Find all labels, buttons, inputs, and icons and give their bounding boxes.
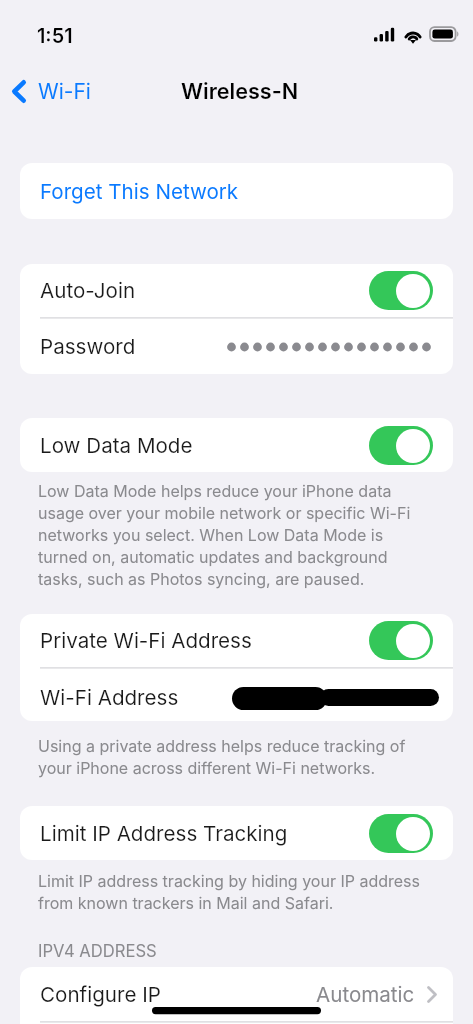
staticText: Automatic: [316, 982, 415, 1007]
button[interactable]: Back to Wi-Fi: [0, 71, 103, 112]
staticText: 1:51: [37, 24, 73, 48]
button[interactable]: Private Wi-Fi Address: [20, 614, 453, 667]
staticText: Using a private address helps reduce tra…: [38, 736, 428, 777]
button[interactable]: Forget This Network: [20, 163, 453, 219]
button[interactable]: Auto-Join: [20, 264, 453, 317]
button[interactable]: Configure IP: [20, 967, 453, 1021]
staticText: Wireless-N: [181, 78, 299, 104]
staticText: Private Wi-Fi Address: [40, 628, 252, 653]
staticText: Password: [40, 334, 136, 359]
staticText: Wi-Fi Address: [40, 685, 179, 710]
button[interactable]: Toggle on: [369, 271, 433, 310]
staticText: Wi-Fi: [38, 79, 91, 104]
button[interactable]: Wi-Fi Address: [20, 669, 453, 721]
staticText: IPV4 ADDRESS: [38, 941, 157, 961]
staticText: Limit IP Address Tracking: [40, 821, 288, 846]
staticText: Configure IP: [40, 982, 161, 1007]
button[interactable]: Toggle on: [369, 621, 433, 660]
staticText: Limit IP address tracking by hiding your…: [38, 871, 428, 912]
staticText: Low Data Mode: [40, 433, 193, 458]
staticText: Auto-Join: [40, 278, 136, 303]
button[interactable]: Low Data Mode: [20, 418, 453, 472]
button[interactable]: Toggle on: [369, 426, 433, 465]
staticText: Forget This Network: [40, 179, 239, 204]
button[interactable]: Toggle on: [369, 814, 433, 853]
button[interactable]: Limit IP Address Tracking: [20, 806, 453, 860]
button[interactable]: Password: [20, 319, 453, 374]
staticText: Low Data Mode helps reduce your iPhone d…: [38, 481, 428, 588]
